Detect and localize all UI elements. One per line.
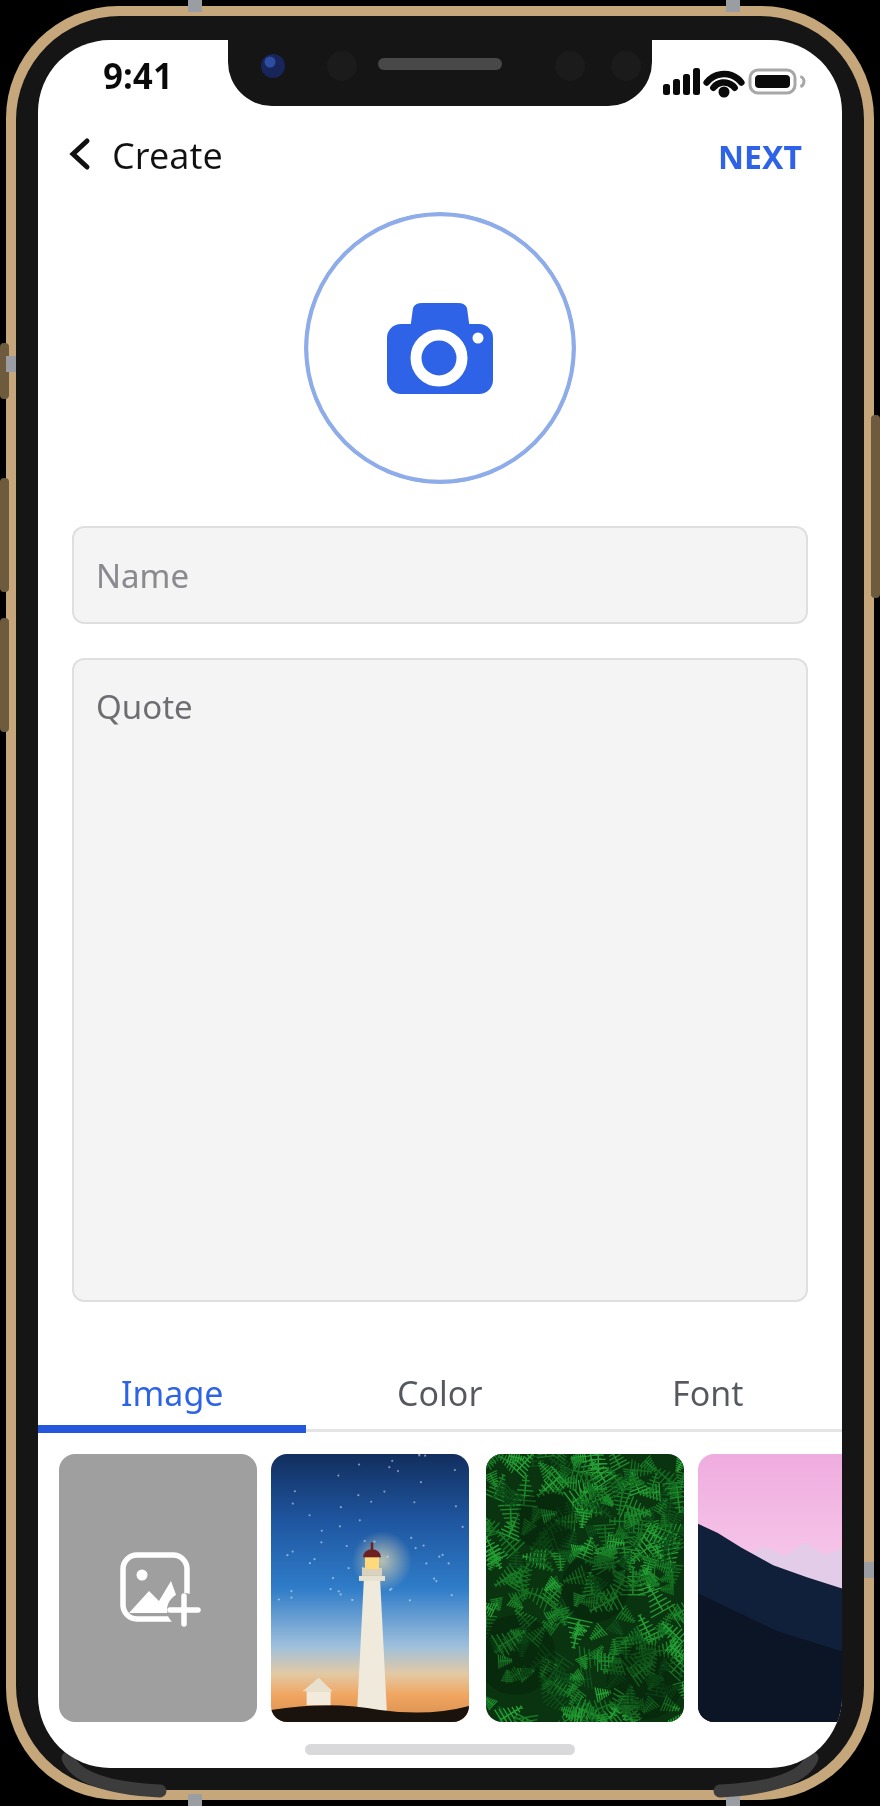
button[interactable] <box>271 1454 469 1722</box>
staticText: Create <box>112 131 223 177</box>
staticText: 9:41 <box>103 52 173 100</box>
button[interactable]: Image <box>38 1360 306 1426</box>
button[interactable]: NEXT <box>718 135 802 179</box>
button[interactable] <box>304 212 576 484</box>
button[interactable]: Name <box>72 526 808 624</box>
button[interactable]: Quote <box>72 658 808 1302</box>
button[interactable] <box>59 1454 257 1722</box>
staticText: Font <box>672 1370 744 1416</box>
button[interactable]: Create <box>64 131 223 177</box>
button[interactable] <box>486 1454 684 1722</box>
button[interactable]: Color <box>306 1360 574 1426</box>
staticText: Name <box>96 553 190 598</box>
staticText: Quote <box>96 684 193 729</box>
staticText: Color <box>397 1370 483 1416</box>
button[interactable]: Font <box>574 1360 842 1426</box>
staticText: Image <box>121 1370 224 1416</box>
staticText: NEXT <box>718 135 802 179</box>
button[interactable] <box>698 1454 842 1722</box>
